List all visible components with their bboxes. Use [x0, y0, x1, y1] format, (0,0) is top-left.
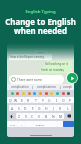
button[interactable]	[56, 92, 59, 95]
button[interactable]: S	[15, 105, 22, 111]
staticText: P	[69, 98, 72, 103]
button[interactable]: H	[43, 105, 50, 111]
staticText: J	[53, 106, 54, 111]
staticText: L	[67, 106, 69, 111]
button[interactable]: English	[24, 121, 57, 127]
staticText: compli	[63, 85, 73, 89]
staticText: How is the Report coming along	[10, 55, 51, 59]
button[interactable]: A	[9, 105, 15, 111]
staticText: F	[32, 106, 34, 111]
staticText: There were some complications	[17, 78, 62, 82]
staticText: Q	[9, 98, 12, 103]
staticText: English	[36, 123, 45, 126]
button[interactable]: ,	[18, 121, 24, 127]
staticText: S	[18, 106, 20, 111]
button[interactable]	[45, 92, 48, 95]
button[interactable]: K	[57, 105, 64, 111]
button[interactable]: C	[29, 113, 36, 119]
staticText: C	[31, 114, 34, 119]
staticText: TODAY	[37, 50, 45, 53]
staticText: I	[56, 98, 58, 103]
button[interactable]: Shift	[7, 113, 16, 119]
button[interactable]	[39, 92, 42, 95]
button[interactable]: Enter	[63, 121, 74, 127]
button[interactable]: N	[50, 113, 57, 119]
button[interactable]: .	[57, 121, 63, 127]
staticText: N	[52, 114, 55, 119]
button[interactable]	[62, 92, 65, 95]
button[interactable]: E	[19, 97, 25, 103]
button[interactable]	[22, 92, 25, 95]
button[interactable]	[11, 92, 14, 95]
button[interactable]	[50, 92, 53, 95]
button[interactable]: J	[50, 105, 57, 111]
button[interactable]: R	[25, 97, 32, 103]
staticText: B	[45, 114, 48, 119]
button[interactable]: ?123	[7, 121, 18, 127]
staticText: H	[45, 106, 48, 111]
staticText: .	[60, 122, 61, 126]
staticText: G	[38, 106, 41, 111]
button[interactable]	[33, 92, 36, 95]
staticText: Change to English when needed	[5, 17, 76, 37]
staticText: Still working on it	[45, 62, 68, 66]
staticText: K	[59, 106, 62, 111]
button[interactable]: F	[29, 105, 36, 111]
button[interactable]: complications	[33, 84, 60, 90]
button[interactable]: M	[57, 113, 64, 119]
button[interactable]: B	[43, 113, 50, 119]
button[interactable]: G	[36, 105, 43, 111]
button[interactable]: Send	[67, 73, 77, 83]
staticText: Z	[18, 114, 20, 119]
staticText: ,	[21, 122, 22, 126]
staticText: U	[48, 98, 51, 103]
staticText: complications	[37, 85, 56, 89]
button[interactable]: D	[22, 105, 29, 111]
button[interactable]: P	[67, 97, 74, 103]
staticText: V	[38, 114, 41, 119]
staticText: A	[11, 106, 14, 111]
staticText: E	[21, 98, 23, 103]
button[interactable]: Z	[16, 113, 22, 119]
staticText: W	[14, 98, 18, 103]
staticText: X	[25, 114, 27, 119]
button[interactable]: complication	[7, 84, 32, 90]
button[interactable]: T	[32, 97, 39, 103]
staticText: English Typing	[25, 9, 56, 15]
staticText: ?123	[10, 123, 16, 126]
button[interactable]: Backspace	[64, 113, 74, 119]
button[interactable]: I	[53, 97, 60, 103]
staticText: D	[24, 106, 27, 111]
button[interactable]: O	[60, 97, 67, 103]
button[interactable]: Y	[39, 97, 46, 103]
button[interactable]: X	[22, 113, 29, 119]
button[interactable]: compli	[61, 84, 74, 90]
staticText: T	[35, 98, 37, 103]
button[interactable]: L	[64, 105, 71, 111]
button[interactable]	[67, 92, 70, 95]
button[interactable]: W	[13, 97, 19, 103]
staticText: Y	[42, 98, 44, 103]
staticText: R	[27, 98, 30, 103]
staticText: O	[62, 98, 65, 103]
button[interactable]	[28, 92, 31, 95]
staticText: M	[59, 114, 63, 119]
button[interactable]: U	[46, 97, 53, 103]
button[interactable]: Q	[7, 97, 13, 103]
button[interactable]: V	[36, 113, 43, 119]
button[interactable]	[16, 92, 19, 95]
staticText: complication	[11, 85, 29, 89]
button[interactable]: There were some complications	[9, 75, 64, 84]
staticText: finish on monday	[41, 68, 64, 72]
